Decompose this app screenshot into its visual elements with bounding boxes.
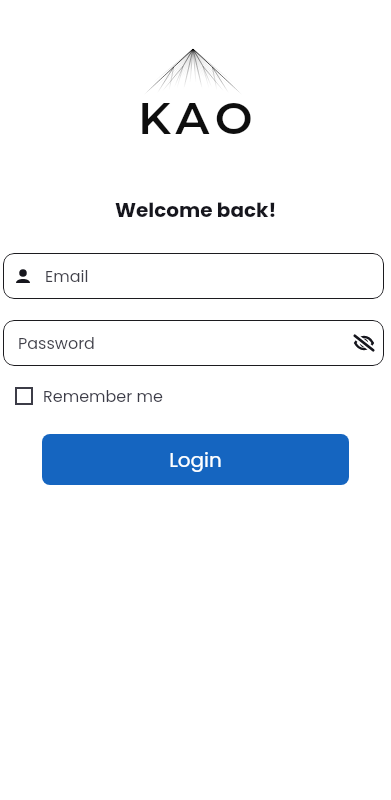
button[interactable]: Show password	[347, 326, 381, 360]
staticText: Remember me	[43, 385, 163, 407]
button[interactable]: Remember me	[15, 383, 163, 409]
staticText: Password	[18, 332, 95, 354]
button[interactable]: Login	[42, 434, 349, 485]
button[interactable]: Email	[3, 253, 384, 299]
button[interactable]: Password	[3, 320, 384, 366]
staticText: Email	[45, 265, 89, 287]
staticText: KAO	[138, 90, 259, 145]
staticText: Welcome back!	[115, 196, 277, 224]
staticText: Login	[169, 446, 222, 474]
